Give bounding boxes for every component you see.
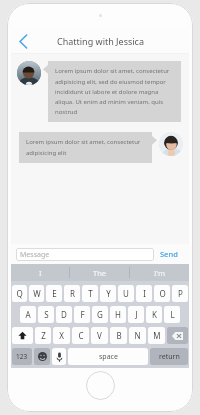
staticText: F: [80, 309, 85, 320]
button[interactable]: [159, 132, 183, 156]
button[interactable]: U: [118, 285, 134, 302]
staticText: Chatting with Jessica: [57, 35, 144, 47]
button[interactable]: I: [11, 264, 69, 281]
button[interactable]: B: [110, 327, 127, 344]
staticText: J: [135, 309, 138, 320]
button[interactable]: [17, 61, 41, 85]
button[interactable]: Message: [16, 248, 154, 261]
button[interactable]: C: [72, 327, 89, 344]
button[interactable]: F: [74, 306, 90, 323]
button[interactable]: N: [129, 327, 146, 344]
staticText: R: [70, 288, 75, 299]
staticText: A: [25, 309, 31, 320]
button[interactable]: Emoji: [34, 348, 50, 365]
button[interactable]: D: [56, 306, 72, 323]
staticText: C: [78, 330, 84, 341]
button[interactable]: space: [68, 348, 148, 365]
button[interactable]: A: [20, 306, 36, 323]
button[interactable]: 123: [12, 348, 32, 365]
button[interactable]: Voice input: [52, 348, 66, 365]
button[interactable]: H: [110, 306, 126, 323]
staticText: Q: [16, 288, 23, 299]
staticText: P: [178, 288, 183, 299]
staticText: 123: [16, 352, 28, 361]
button[interactable]: T: [82, 285, 98, 302]
staticText: T: [88, 288, 93, 299]
button[interactable]: E: [46, 285, 62, 302]
button[interactable]: M: [148, 327, 165, 344]
button[interactable]: return: [150, 348, 188, 365]
button[interactable]: J: [128, 306, 144, 323]
staticText: X: [59, 330, 64, 341]
button[interactable]: I'm: [130, 264, 189, 281]
staticText: B: [116, 330, 122, 341]
button[interactable]: Back: [11, 28, 35, 54]
staticText: M: [153, 330, 161, 341]
staticText: space: [99, 352, 118, 362]
button[interactable]: The: [70, 264, 129, 281]
button[interactable]: Y: [100, 285, 116, 302]
button[interactable]: P: [172, 285, 188, 302]
staticText: K: [152, 309, 157, 320]
button[interactable]: K: [146, 306, 162, 323]
staticText: return: [159, 352, 180, 362]
staticText: E: [52, 288, 57, 299]
staticText: Y: [106, 288, 111, 299]
button[interactable]: Send: [154, 244, 184, 264]
staticText: S: [44, 309, 49, 320]
button[interactable]: Q: [12, 285, 27, 302]
staticText: Lorem ipsum dolor sit amet, consectetur …: [55, 67, 174, 116]
button[interactable]: O: [154, 285, 170, 302]
button[interactable]: Shift: [12, 327, 33, 344]
button[interactable]: L: [164, 306, 180, 323]
staticText: I: [143, 288, 146, 299]
button[interactable]: Z: [35, 327, 51, 344]
button[interactable]: Lorem ipsum dolor sit amet, consectetur …: [19, 132, 152, 163]
staticText: L: [170, 309, 175, 320]
button[interactable]: Lorem ipsum dolor sit amet, consectetur …: [48, 61, 181, 122]
staticText: W: [33, 288, 41, 299]
staticText: Lorem ipsum dolor sit amet, consectetur …: [26, 138, 145, 157]
staticText: N: [134, 330, 141, 341]
staticText: The: [93, 268, 107, 278]
staticText: U: [123, 288, 129, 299]
button[interactable]: W: [29, 285, 44, 302]
button[interactable]: Home: [86, 371, 115, 400]
staticText: H: [115, 309, 121, 320]
staticText: Send: [160, 249, 178, 259]
staticText: Z: [41, 330, 46, 341]
staticText: O: [159, 288, 166, 299]
button[interactable]: V: [91, 327, 108, 344]
staticText: D: [61, 309, 67, 320]
staticText: Message: [20, 250, 50, 260]
button[interactable]: G: [92, 306, 108, 323]
button[interactable]: R: [64, 285, 80, 302]
staticText: V: [97, 330, 102, 341]
staticText: I'm: [154, 268, 166, 278]
button[interactable]: X: [53, 327, 70, 344]
staticText: I: [39, 268, 42, 278]
button[interactable]: Backspace: [167, 327, 188, 344]
button[interactable]: S: [38, 306, 54, 323]
button[interactable]: I: [136, 285, 152, 302]
staticText: G: [97, 309, 103, 320]
